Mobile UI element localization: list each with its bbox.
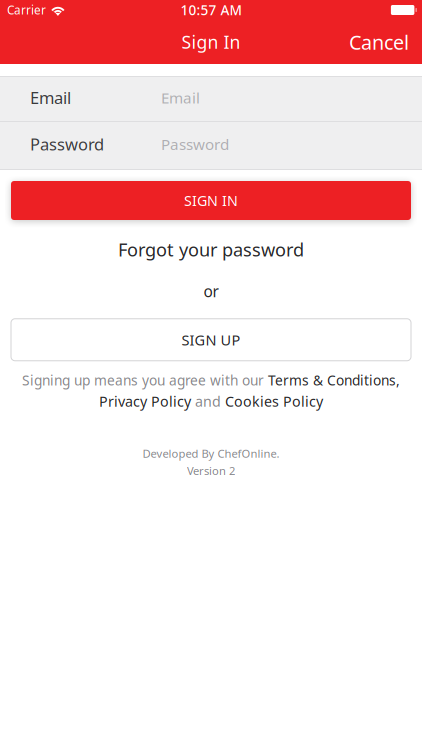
staticText: Signing up means you agree with our bbox=[22, 371, 268, 389]
button[interactable]: SIGN IN bbox=[11, 181, 411, 220]
staticText: SIGN UP bbox=[181, 330, 240, 350]
staticText: Password bbox=[161, 134, 229, 154]
staticText: Cancel bbox=[349, 29, 409, 55]
button[interactable]: Terms & Conditions, bbox=[268, 371, 400, 389]
button[interactable]: Password bbox=[0, 122, 422, 169]
button[interactable]: SIGN UP bbox=[11, 319, 411, 361]
staticText: Privacy Policy bbox=[99, 391, 191, 411]
staticText: SIGN IN bbox=[184, 191, 238, 210]
staticText: 10:57 AM bbox=[180, 1, 241, 19]
staticText: Forgot your password bbox=[118, 237, 304, 262]
staticText: Terms & Conditions, bbox=[268, 371, 400, 389]
staticText: Sign In bbox=[181, 30, 240, 54]
staticText: or bbox=[203, 281, 218, 302]
staticText: Version 2 bbox=[187, 463, 235, 478]
staticText: Email bbox=[30, 86, 71, 109]
button[interactable]: Email bbox=[0, 77, 422, 121]
staticText: Developed By ChefOnline. bbox=[142, 446, 279, 461]
button[interactable]: Cancel bbox=[341, 22, 417, 62]
staticText: and bbox=[191, 391, 225, 411]
staticText: Email bbox=[161, 87, 200, 108]
button[interactable]: Forgot your password bbox=[118, 237, 304, 262]
staticText: Cookies Policy bbox=[225, 391, 323, 411]
button[interactable]: Privacy Policy bbox=[99, 391, 191, 411]
button[interactable]: Cookies Policy bbox=[225, 391, 323, 411]
staticText: Password bbox=[30, 133, 104, 155]
staticText: Carrier bbox=[7, 2, 46, 18]
